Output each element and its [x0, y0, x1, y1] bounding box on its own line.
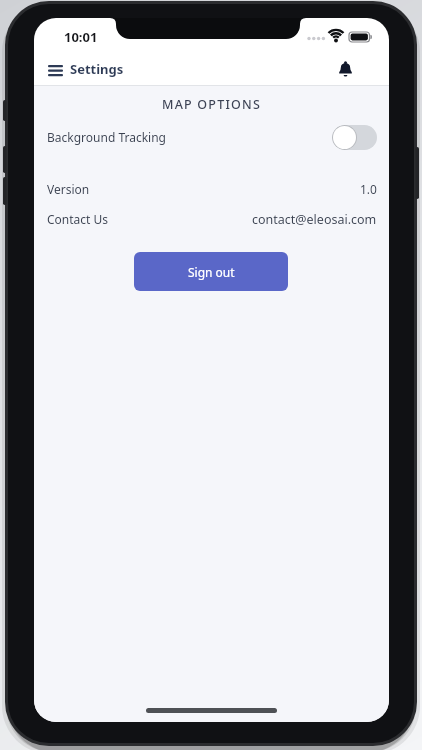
- staticText: Sign out: [188, 264, 235, 280]
- button[interactable]: Sign out: [134, 252, 288, 291]
- staticText: Background Tracking: [47, 129, 166, 145]
- button[interactable]: Contact Us: [47, 208, 377, 230]
- staticText: Version: [47, 181, 90, 197]
- button[interactable]: [332, 56, 358, 82]
- button[interactable]: [44, 60, 66, 80]
- staticText: contact@eleosai.com: [252, 211, 377, 228]
- staticText: 10:01: [64, 28, 98, 46]
- staticText: Settings: [70, 60, 124, 78]
- staticText: 1.0: [360, 181, 377, 197]
- staticText: MAP OPTIONS: [162, 96, 261, 113]
- button[interactable]: [332, 125, 377, 150]
- staticText: Contact Us: [47, 211, 109, 227]
